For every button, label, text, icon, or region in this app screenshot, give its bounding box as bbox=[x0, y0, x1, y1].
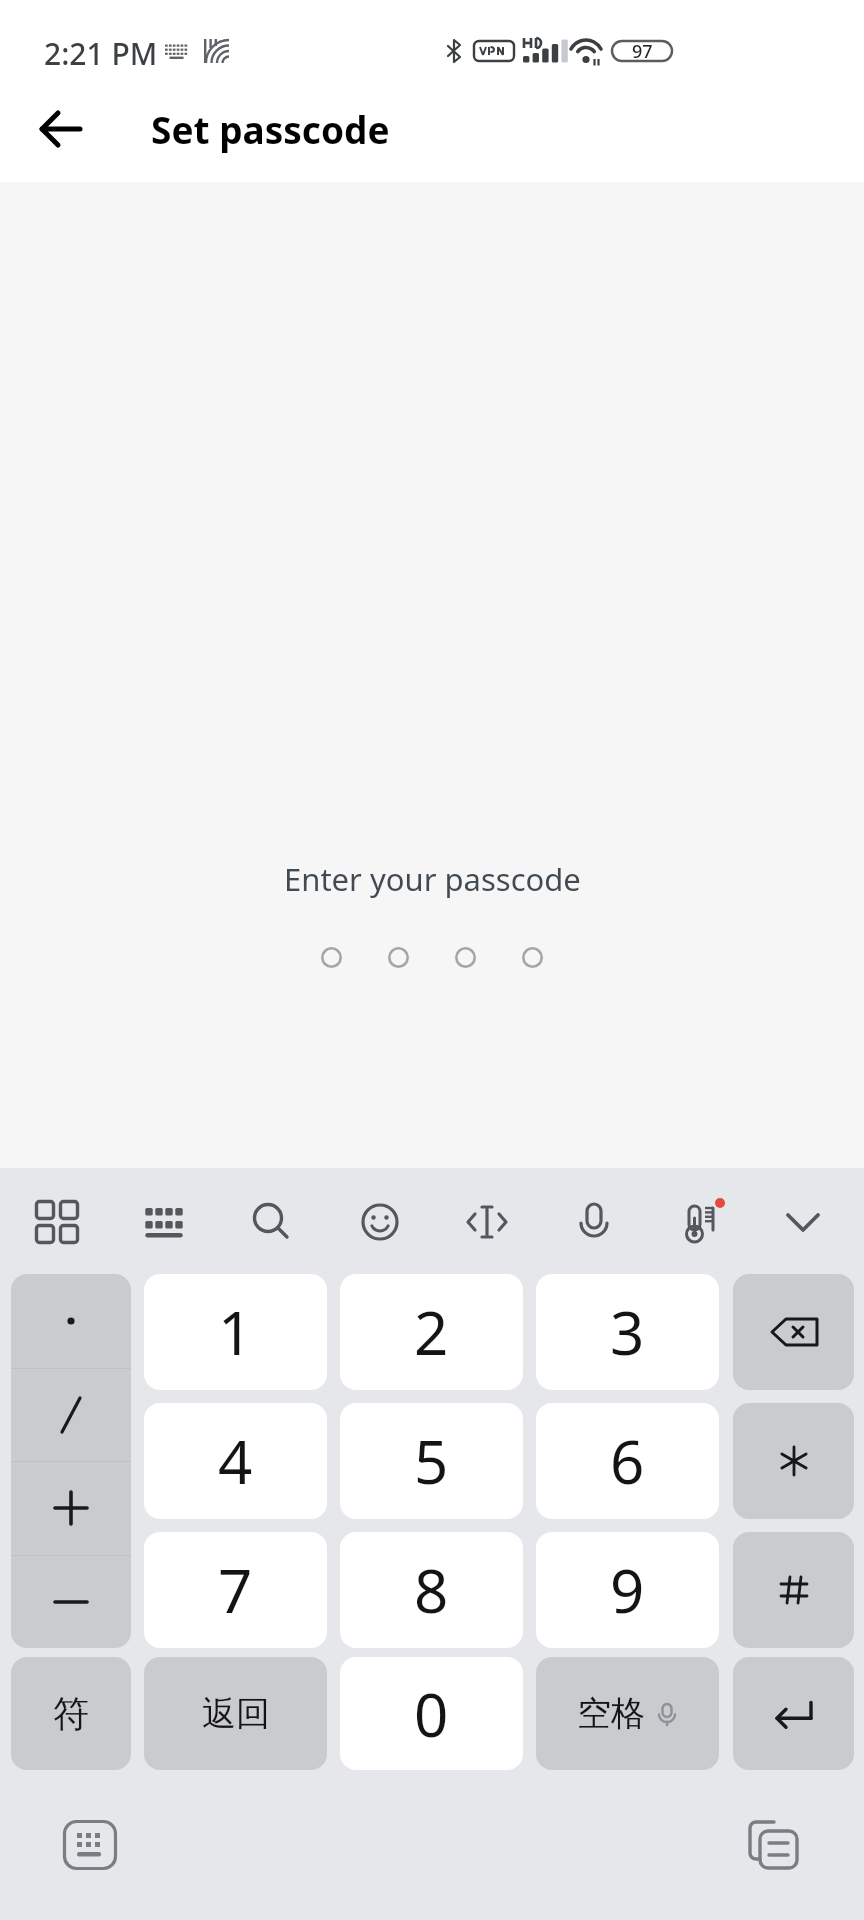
staticText: 4 bbox=[218, 1420, 253, 1502]
button[interactable]: 2 bbox=[340, 1274, 523, 1390]
button[interactable] bbox=[28, 96, 94, 162]
button[interactable]: 1 bbox=[144, 1274, 327, 1390]
staticText: 97 bbox=[632, 39, 653, 64]
staticText: 1 bbox=[218, 1291, 253, 1373]
button[interactable]: 7 bbox=[144, 1532, 327, 1648]
button[interactable]: 符 bbox=[11, 1657, 131, 1770]
button[interactable] bbox=[19, 1184, 95, 1260]
staticText: 0 bbox=[414, 1673, 449, 1755]
staticText: 符 bbox=[53, 1691, 89, 1736]
staticText: 空格 bbox=[577, 1692, 645, 1735]
button[interactable] bbox=[342, 1184, 418, 1260]
button[interactable] bbox=[733, 1657, 854, 1770]
button[interactable] bbox=[11, 1461, 131, 1555]
staticText: 2 bbox=[414, 1291, 449, 1373]
button[interactable] bbox=[734, 1805, 814, 1885]
button[interactable]: 3 bbox=[536, 1274, 719, 1390]
button[interactable]: 返回 bbox=[144, 1657, 327, 1770]
button[interactable] bbox=[663, 1184, 739, 1260]
button[interactable] bbox=[765, 1184, 841, 1260]
staticText: 5 bbox=[414, 1420, 449, 1502]
button[interactable]: 8 bbox=[340, 1532, 523, 1648]
button[interactable]: 空格 bbox=[536, 1657, 719, 1770]
staticText: 8 bbox=[414, 1549, 449, 1631]
button[interactable]: 6 bbox=[536, 1403, 719, 1519]
button[interactable] bbox=[733, 1403, 854, 1519]
staticText: 2:21 PM bbox=[44, 33, 158, 74]
staticText: Enter your passcode bbox=[284, 858, 581, 900]
button[interactable] bbox=[11, 1368, 131, 1462]
button[interactable] bbox=[50, 1805, 130, 1885]
button[interactable]: 5 bbox=[340, 1403, 523, 1519]
button[interactable]: 9 bbox=[536, 1532, 719, 1648]
button[interactable] bbox=[733, 1532, 854, 1648]
staticText: 9 bbox=[610, 1549, 645, 1631]
button[interactable]: 4 bbox=[144, 1403, 327, 1519]
staticText: 3 bbox=[610, 1291, 645, 1373]
button[interactable] bbox=[126, 1184, 202, 1260]
button[interactable] bbox=[11, 1555, 131, 1648]
button[interactable] bbox=[449, 1184, 525, 1260]
button[interactable] bbox=[11, 1274, 131, 1368]
staticText: 7 bbox=[218, 1549, 253, 1631]
button[interactable]: 0 bbox=[340, 1657, 523, 1770]
staticText: Set passcode bbox=[151, 104, 390, 154]
button[interactable] bbox=[733, 1274, 854, 1390]
button[interactable] bbox=[234, 1184, 310, 1260]
button[interactable] bbox=[556, 1184, 632, 1260]
staticText: 返回 bbox=[202, 1692, 270, 1735]
staticText: 6 bbox=[610, 1420, 645, 1502]
